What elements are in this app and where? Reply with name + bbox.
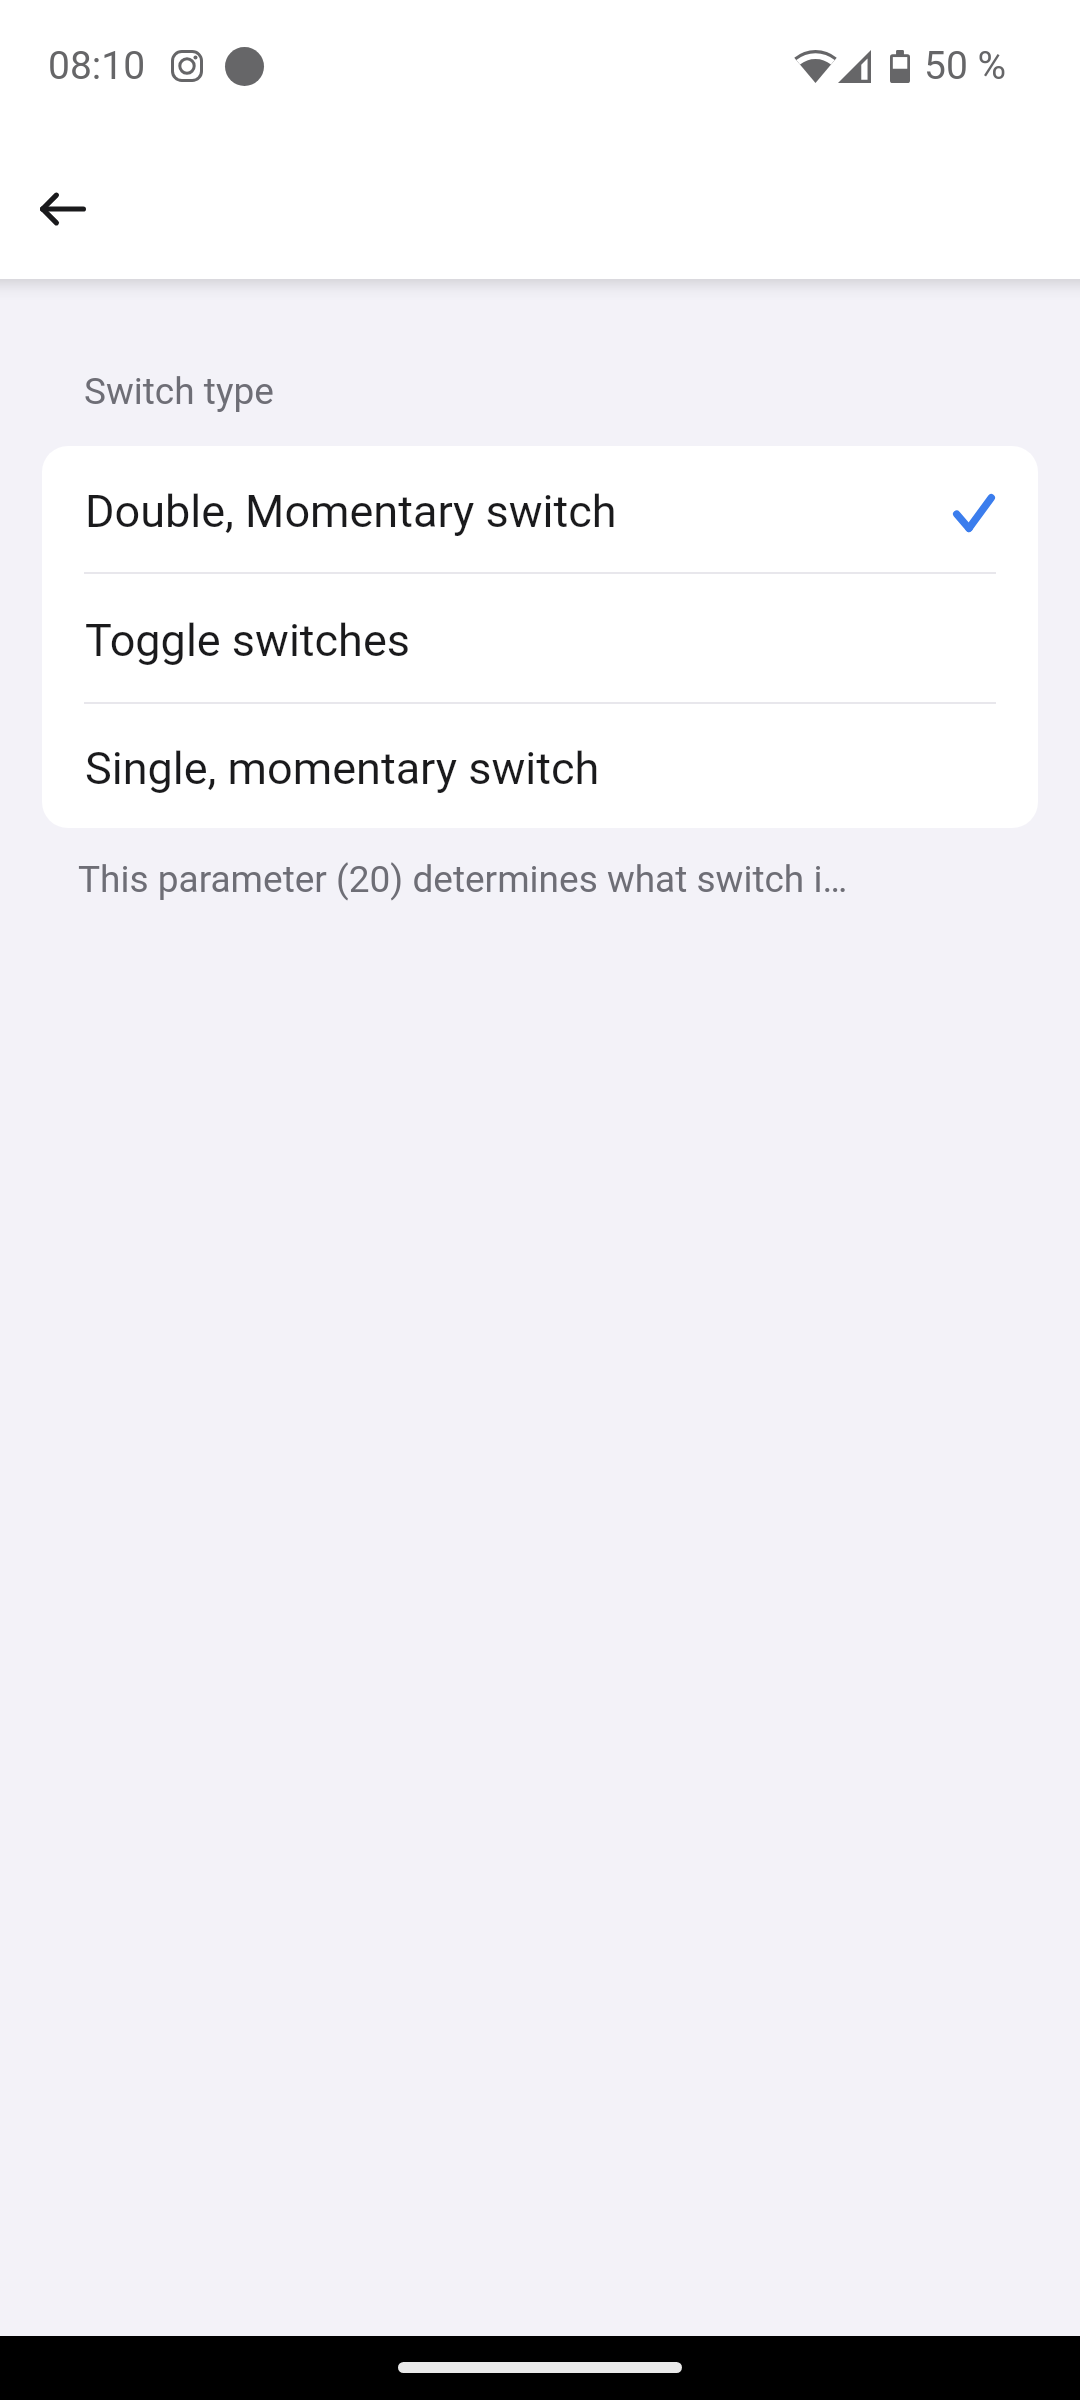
button[interactable]: Double, Momentary switch [42, 446, 1038, 572]
staticText: Toggle switches [85, 614, 410, 667]
staticText: 08:10 [48, 43, 146, 89]
button[interactable]: Single, momentary switch [42, 704, 1038, 828]
staticText: This parameter (20) determines what swit… [78, 858, 848, 901]
button[interactable]: Back [3, 149, 123, 269]
staticText: 50 % [924, 43, 1007, 89]
staticText: Switch type [84, 370, 274, 413]
other: Selected [953, 494, 995, 532]
button[interactable]: Toggle switches [42, 574, 1038, 702]
staticText: Single, momentary switch [85, 742, 600, 795]
staticText: Double, Momentary switch [85, 485, 617, 538]
